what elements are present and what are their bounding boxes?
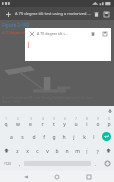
button[interactable]: Delete bbox=[91, 9, 101, 19]
button[interactable]: . bbox=[92, 143, 102, 157]
button[interactable]: b bbox=[52, 143, 62, 157]
staticText: ! bbox=[86, 149, 88, 156]
staticText: x bbox=[26, 148, 29, 155]
staticText: 1 bbox=[5, 117, 7, 121]
staticText: b bbox=[55, 148, 59, 155]
button[interactable]: c bbox=[32, 143, 42, 157]
staticText: t bbox=[53, 121, 55, 128]
staticText: , bbox=[87, 145, 88, 149]
staticText: g bbox=[52, 134, 56, 141]
button[interactable]: Emoji bbox=[100, 157, 114, 170]
staticText: Figure 2-189 bbox=[2, 22, 30, 28]
staticText: d bbox=[32, 134, 36, 141]
staticText: f bbox=[43, 134, 45, 141]
button[interactable]: m bbox=[72, 143, 82, 157]
button[interactable]: , bbox=[82, 143, 92, 157]
button[interactable]: g bbox=[49, 129, 59, 143]
staticText: 9 bbox=[97, 117, 99, 121]
button[interactable]: Save note bbox=[100, 29, 109, 38]
button[interactable]: Close bbox=[3, 9, 13, 19]
button[interactable]: 8 bbox=[81, 115, 92, 129]
button[interactable]: 4 bbox=[36, 115, 48, 129]
button[interactable]: 5 bbox=[48, 115, 59, 129]
staticText: s bbox=[21, 134, 24, 141]
staticText: 8 bbox=[86, 117, 88, 121]
staticText: ? bbox=[96, 149, 99, 156]
staticText: A 70-degree tilt test using a motorized … bbox=[2, 31, 99, 35]
staticText: m bbox=[75, 148, 80, 155]
staticText: e bbox=[29, 121, 32, 128]
button[interactable]: v bbox=[42, 143, 52, 157]
button[interactable]: z bbox=[12, 143, 22, 157]
staticText: 3 bbox=[30, 117, 32, 121]
button[interactable]: d bbox=[28, 129, 39, 143]
staticText: , bbox=[19, 161, 21, 167]
button[interactable]: Home bbox=[51, 171, 63, 182]
staticText: 0 bbox=[108, 117, 110, 121]
staticText: a bbox=[10, 134, 13, 141]
button[interactable]: x bbox=[22, 143, 32, 157]
button[interactable]: Shift bbox=[0, 143, 12, 157]
button[interactable]: 2 bbox=[12, 115, 24, 129]
button[interactable]: , bbox=[15, 157, 24, 170]
staticText: y bbox=[63, 121, 66, 128]
staticText: 2 bbox=[17, 117, 19, 121]
staticText: A 70 degree tilt t... bbox=[37, 31, 88, 36]
button[interactable]: Voice input bbox=[105, 106, 114, 115]
button[interactable]: Enter bbox=[99, 129, 114, 143]
staticText: h bbox=[62, 134, 66, 141]
staticText: 7 bbox=[75, 117, 77, 121]
button[interactable]: . bbox=[91, 157, 100, 170]
button[interactable]: j bbox=[69, 129, 79, 143]
button[interactable]: Delete note bbox=[88, 29, 97, 38]
staticText: c bbox=[36, 148, 39, 155]
button[interactable]: 0 bbox=[103, 115, 114, 129]
button[interactable]: ?123 bbox=[0, 157, 15, 170]
button[interactable]: Backspace bbox=[102, 143, 114, 157]
staticText: r bbox=[41, 121, 44, 128]
button[interactable]: k bbox=[79, 129, 89, 143]
button[interactable]: 3 bbox=[24, 115, 36, 129]
button[interactable]: l bbox=[89, 129, 99, 143]
button[interactable]: Back bbox=[20, 171, 32, 182]
button[interactable]: Recents bbox=[83, 171, 95, 182]
button[interactable]: 9 bbox=[92, 115, 103, 129]
staticText: z bbox=[16, 148, 19, 155]
staticText: n bbox=[65, 148, 69, 155]
staticText: j bbox=[73, 134, 75, 141]
button[interactable]: n bbox=[62, 143, 72, 157]
staticText: ?123 bbox=[4, 162, 11, 166]
button[interactable]: Close note bbox=[27, 29, 36, 38]
staticText: 6 bbox=[64, 117, 66, 121]
staticText: w bbox=[16, 121, 20, 128]
staticText: o bbox=[96, 121, 100, 128]
staticText: A 70 degree tilt test using a motorized … bbox=[15, 11, 91, 16]
staticText: i bbox=[86, 121, 88, 128]
button[interactable]: a bbox=[6, 129, 17, 143]
staticText: . bbox=[97, 145, 98, 149]
button[interactable]: 1 bbox=[0, 115, 12, 129]
staticText: 5 bbox=[53, 117, 55, 121]
staticText: 4 bbox=[42, 117, 44, 121]
staticText: . bbox=[95, 161, 97, 167]
staticText: p bbox=[107, 121, 111, 128]
button[interactable]: Save bbox=[101, 9, 111, 19]
staticText: q bbox=[4, 121, 8, 128]
button[interactable]: h bbox=[59, 129, 69, 143]
button[interactable]: 7 bbox=[70, 115, 81, 129]
staticText: l bbox=[93, 134, 95, 141]
button[interactable]: s bbox=[17, 129, 28, 143]
button[interactable]: 6 bbox=[59, 115, 70, 129]
staticText: v bbox=[46, 148, 49, 155]
button[interactable]: f bbox=[39, 129, 49, 143]
staticText: k bbox=[83, 134, 86, 141]
staticText: u bbox=[74, 121, 78, 128]
